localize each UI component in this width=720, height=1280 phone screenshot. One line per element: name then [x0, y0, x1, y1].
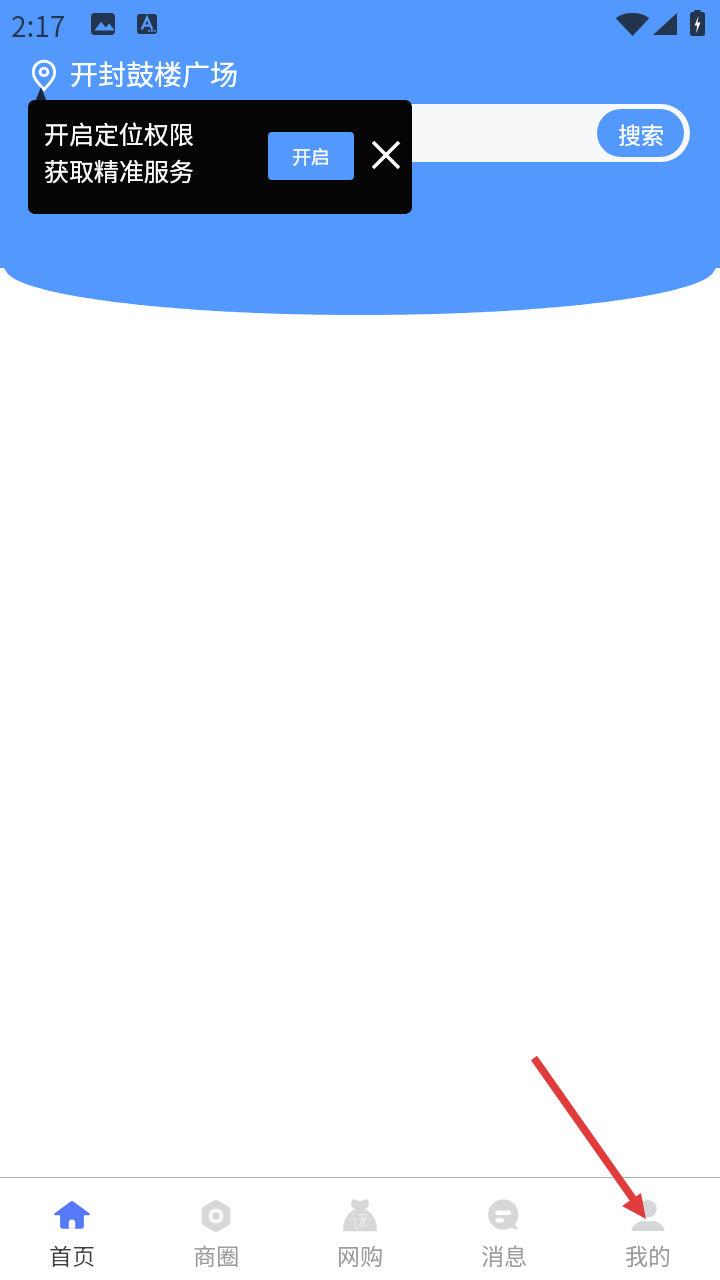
staticText: 2:17 [11, 5, 66, 46]
staticText: 网购 [337, 1238, 383, 1271]
button[interactable]: 首页 [0, 1178, 144, 1280]
button[interactable]: 消息 [432, 1178, 576, 1280]
button[interactable]: 搜索 [30, 104, 690, 162]
staticText: 获取精准服务 [44, 152, 195, 188]
button[interactable]: Close [358, 127, 412, 183]
button[interactable]: 网购 [288, 1178, 432, 1280]
staticText: 开启定位权限 [44, 115, 195, 151]
button[interactable]: 开封鼓楼广场 [32, 53, 239, 97]
staticText: 我的 [625, 1238, 671, 1271]
button[interactable]: 搜索 [597, 109, 684, 157]
staticText: 搜索 [618, 117, 664, 150]
button[interactable]: 我的 [576, 1178, 720, 1280]
staticText: 消息 [481, 1238, 527, 1271]
button[interactable]: 商圈 [144, 1178, 288, 1280]
staticText: 开启 [292, 142, 331, 170]
staticText: 首页 [49, 1238, 95, 1271]
staticText: 商圈 [193, 1238, 239, 1271]
button[interactable]: 开启 [268, 132, 354, 180]
staticText: 开封鼓楼广场 [70, 53, 239, 92]
